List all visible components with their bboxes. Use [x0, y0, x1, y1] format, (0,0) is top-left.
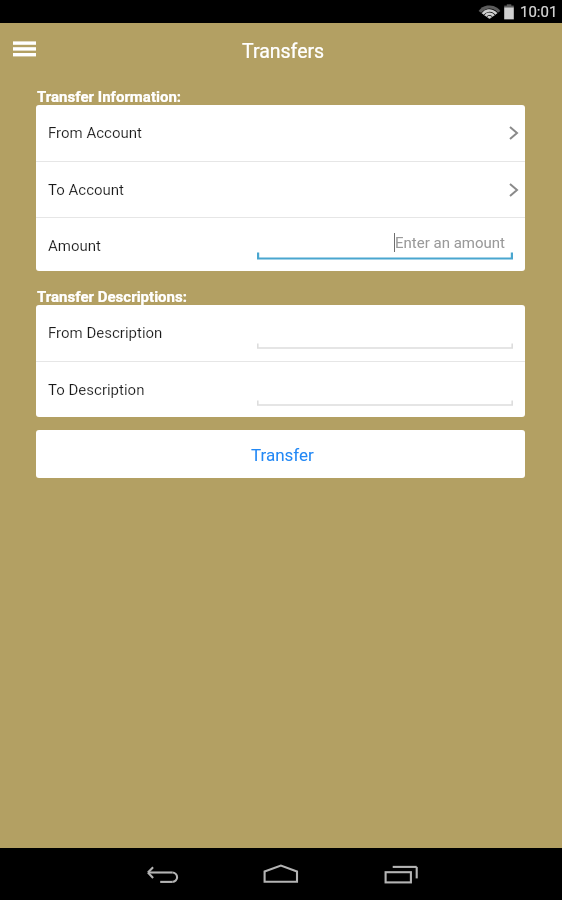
staticText: 10:01	[520, 3, 558, 21]
staticText: Transfer Information:	[37, 88, 182, 106]
staticText: Transfer	[251, 445, 314, 465]
button[interactable]: From Account	[36, 105, 525, 161]
button[interactable]: Recent apps	[366, 848, 436, 900]
button[interactable]: Home	[246, 848, 316, 900]
staticText: To Description	[48, 381, 145, 399]
button[interactable]	[257, 313, 513, 353]
button[interactable]	[257, 370, 513, 410]
button[interactable]: Open navigation menu	[0, 23, 50, 77]
button[interactable]: Back	[127, 848, 197, 900]
staticText: Transfers	[242, 40, 325, 63]
staticText: Amount	[48, 237, 101, 255]
staticText: To Account	[48, 181, 125, 199]
button[interactable]: Transfer	[36, 430, 525, 478]
button[interactable]: Enter an amount	[257, 222, 513, 260]
staticText: Transfer Descriptions:	[37, 288, 187, 306]
staticText: From Account	[48, 124, 142, 142]
button[interactable]: To Account	[36, 162, 525, 217]
staticText: Enter an amount	[395, 234, 505, 252]
staticText: From Description	[48, 324, 163, 342]
